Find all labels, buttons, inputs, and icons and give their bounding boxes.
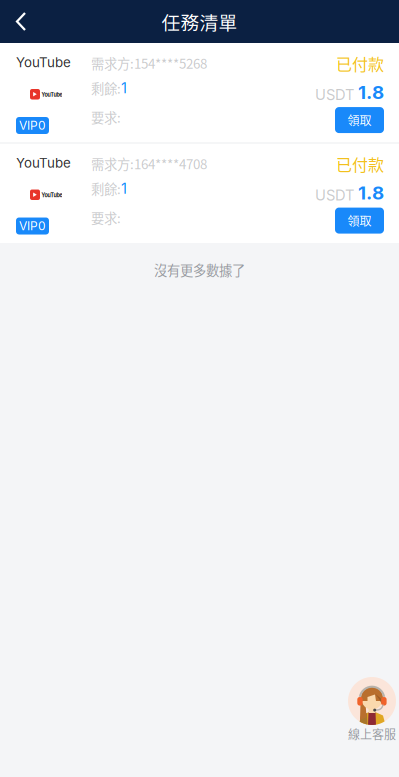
staticText: 沒有更多數據了 [154,260,245,279]
staticText: YouTube [16,155,71,171]
button[interactable]: 領取 [335,107,384,133]
staticText: USDT [315,186,354,204]
staticText: 1.8 [358,81,384,104]
staticText: 已付款 [336,152,384,176]
staticText: YouTube [16,54,71,70]
staticText: USDT [315,86,354,103]
staticText: YouTube [41,90,62,99]
staticText: 要求: [91,107,121,127]
button[interactable]: 領取 [335,208,384,234]
staticText: 已付款 [336,52,384,75]
staticText: 剩餘: [91,179,121,198]
staticText: 任務清單 [161,8,237,35]
staticText: 線上客服 [348,725,396,743]
button[interactable]: 線上客服 [348,677,396,741]
staticText: 剩餘: [91,78,121,98]
staticText: 需求方:164****4708 [91,154,207,173]
staticText: 1 [121,79,127,97]
staticText: VIP0 [19,219,46,233]
staticText: 1 [121,180,127,197]
staticText: 需求方:154****5268 [91,53,207,73]
staticText: 要求: [91,208,121,227]
button[interactable]: Back [0,0,42,43]
staticText: 領取 [347,111,371,129]
staticText: 1.8 [358,181,384,204]
staticText: 領取 [347,212,371,229]
staticText: VIP0 [19,118,46,133]
staticText: YouTube [41,190,62,199]
